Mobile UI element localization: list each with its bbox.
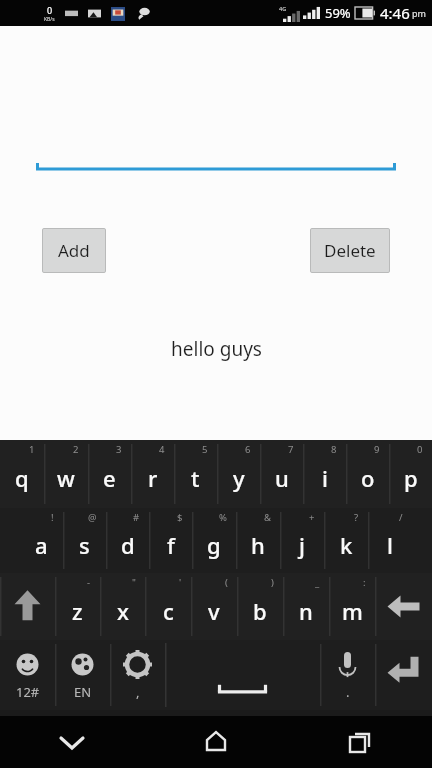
- button[interactable]: 9: [346, 440, 389, 508]
- button[interactable]: %: [192, 508, 236, 573]
- staticText: s: [79, 530, 90, 560]
- staticText: c: [163, 596, 174, 626]
- button[interactable]: 4: [131, 440, 174, 508]
- button[interactable]: 6: [217, 440, 260, 508]
- button[interactable]: EN: [55, 640, 110, 710]
- staticText: f: [167, 530, 175, 560]
- button[interactable]: Backspace: [375, 573, 432, 640]
- button[interactable]: Recents: [288, 716, 432, 768]
- staticText: Add: [58, 239, 90, 262]
- button[interactable]: Add: [42, 228, 106, 273]
- staticText: @: [88, 511, 97, 524]
- staticText: i: [322, 463, 328, 493]
- staticText: 59%: [325, 4, 351, 22]
- button[interactable]: 12#: [0, 640, 55, 710]
- button[interactable]: [36, 154, 396, 176]
- staticText: KB/s: [44, 16, 55, 23]
- staticText: hello guys: [171, 336, 262, 362]
- staticText: j: [299, 530, 305, 560]
- button[interactable]: $: [149, 508, 192, 573]
- staticText: 5: [202, 443, 208, 456]
- staticText: r: [148, 463, 158, 493]
- button[interactable]: ,: [110, 640, 165, 710]
- button[interactable]: 7: [260, 440, 303, 508]
- button[interactable]: _: [283, 573, 329, 640]
- button[interactable]: /: [368, 508, 412, 573]
- button[interactable]: ": [100, 573, 145, 640]
- staticText: l: [387, 530, 393, 560]
- staticText: 9: [374, 443, 380, 456]
- button[interactable]: Home: [144, 716, 288, 768]
- staticText: a: [35, 530, 48, 560]
- button[interactable]: :: [329, 573, 375, 640]
- staticText: _: [315, 576, 320, 589]
- button[interactable]: +: [280, 508, 324, 573]
- button[interactable]: ): [237, 573, 283, 640]
- staticText: 0: [47, 4, 53, 16]
- button[interactable]: .: [320, 640, 375, 710]
- staticText: -: [87, 576, 91, 589]
- staticText: m: [342, 596, 363, 626]
- button[interactable]: Enter: [375, 640, 432, 710]
- staticText: k: [340, 530, 353, 560]
- staticText: n: [299, 596, 313, 626]
- button[interactable]: Space: [165, 640, 320, 710]
- staticText: z: [72, 596, 83, 626]
- staticText: pm: [412, 7, 426, 19]
- staticText: EN: [74, 683, 92, 701]
- button[interactable]: 1: [0, 440, 44, 508]
- button[interactable]: Delete: [310, 228, 390, 273]
- staticText: p: [404, 463, 418, 493]
- staticText: u: [275, 463, 289, 493]
- button[interactable]: @: [63, 508, 106, 573]
- button[interactable]: (: [191, 573, 237, 640]
- staticText: 2: [73, 443, 79, 456]
- staticText: 8: [331, 443, 337, 456]
- button[interactable]: -: [55, 573, 100, 640]
- staticText: #: [133, 511, 140, 524]
- staticText: 6: [245, 443, 251, 456]
- button[interactable]: #: [106, 508, 149, 573]
- staticText: 4:46: [380, 3, 410, 23]
- button[interactable]: ': [145, 573, 191, 640]
- staticText: .: [346, 683, 350, 701]
- staticText: ": [132, 576, 136, 589]
- staticText: &: [264, 511, 271, 524]
- button[interactable]: &: [236, 508, 280, 573]
- staticText: y: [233, 463, 245, 493]
- button[interactable]: 2: [44, 440, 88, 508]
- staticText: x: [117, 596, 129, 626]
- staticText: 4: [159, 443, 165, 456]
- staticText: !: [51, 511, 54, 524]
- staticText: ?: [354, 511, 359, 524]
- button[interactable]: !: [20, 508, 63, 573]
- staticText: /: [399, 511, 403, 524]
- button[interactable]: ?: [324, 508, 368, 573]
- button[interactable]: 3: [88, 440, 131, 508]
- staticText: g: [207, 530, 221, 560]
- button[interactable]: Back: [0, 716, 144, 768]
- staticText: Delete: [324, 239, 376, 262]
- staticText: e: [103, 463, 116, 493]
- staticText: (: [225, 576, 228, 589]
- staticText: q: [15, 463, 29, 493]
- button[interactable]: 8: [303, 440, 346, 508]
- button[interactable]: 5: [174, 440, 217, 508]
- staticText: d: [121, 530, 135, 560]
- staticText: 0: [417, 443, 423, 456]
- staticText: b: [253, 596, 267, 626]
- staticText: +: [309, 511, 315, 524]
- staticText: 4G: [279, 5, 287, 12]
- button[interactable]: 0: [389, 440, 432, 508]
- staticText: h: [251, 530, 265, 560]
- staticText: v: [208, 596, 220, 626]
- staticText: ,: [136, 683, 140, 701]
- staticText: ': [179, 576, 182, 589]
- staticText: 7: [288, 443, 294, 456]
- staticText: :: [363, 576, 366, 589]
- staticText: 3: [116, 443, 122, 456]
- staticText: 12#: [16, 683, 40, 701]
- button[interactable]: Shift: [0, 573, 55, 640]
- staticText: t: [191, 463, 200, 493]
- staticText: o: [361, 463, 375, 493]
